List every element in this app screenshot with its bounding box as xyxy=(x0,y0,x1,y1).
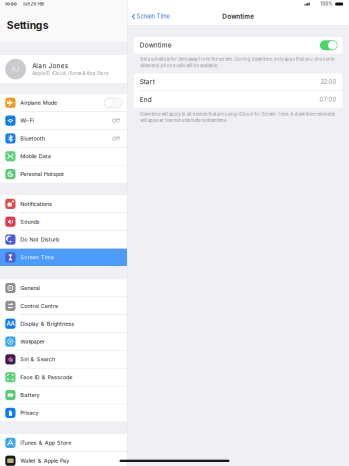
staticText: Wallet & Apple Pay xyxy=(20,457,69,464)
staticText: Downtime will apply to all devices that … xyxy=(140,111,335,123)
staticText: Personal Hotspot xyxy=(20,171,64,177)
staticText: iTunes & App Store xyxy=(20,439,71,446)
button[interactable]: Screen Time xyxy=(0,249,127,266)
button[interactable]: iTunes & App Store xyxy=(0,434,127,452)
button[interactable]: AA xyxy=(0,315,127,332)
button[interactable]: Face ID & Passcode xyxy=(0,368,127,386)
button[interactable]: Wi-Fi xyxy=(0,112,127,129)
button[interactable]: Bluetooth xyxy=(0,130,127,147)
button[interactable]: Battery xyxy=(0,386,127,404)
button[interactable]: AJ xyxy=(0,55,127,83)
staticText: Siri & Search xyxy=(20,356,55,363)
staticText: Start xyxy=(140,78,155,86)
staticText: 07:00 xyxy=(319,96,336,103)
staticText: Sounds xyxy=(20,218,39,225)
staticText: Battery xyxy=(20,392,39,398)
button[interactable]: Privacy xyxy=(0,404,127,422)
staticText: Face ID & Passcode xyxy=(20,374,72,380)
button[interactable]: Control Centre xyxy=(0,297,127,315)
staticText: Settings xyxy=(7,19,49,31)
staticText: AJ xyxy=(12,65,20,73)
staticText: Downtime xyxy=(222,13,254,20)
button[interactable]: Mobile Data xyxy=(0,148,127,165)
button[interactable]: Sounds xyxy=(0,213,127,230)
button[interactable]: Siri & Search xyxy=(0,351,127,368)
staticText: Airplane Mode xyxy=(20,99,57,106)
staticText: Wallpaper xyxy=(20,338,45,345)
staticText: Tue 26 Feb xyxy=(22,1,44,7)
staticText: Do Not Disturb xyxy=(20,236,59,243)
staticText: Alan Jones xyxy=(32,62,68,70)
staticText: AA xyxy=(6,320,14,327)
button[interactable]: Do Not Disturb xyxy=(0,231,127,248)
staticText: Notifications xyxy=(20,201,52,207)
button[interactable]: General xyxy=(0,279,127,297)
staticText: 22:00 xyxy=(320,78,336,85)
staticText: Mobile Data xyxy=(20,153,51,160)
staticText: Apple ID, iCloud, iTunes & App Store xyxy=(32,71,108,76)
button[interactable]: Wallet & Apple Pay xyxy=(0,452,127,466)
button[interactable]: Airplane Mode xyxy=(0,94,127,111)
staticText: Control Centre xyxy=(20,303,58,309)
staticText: Screen Time xyxy=(136,13,169,20)
staticText: Display & Brightness xyxy=(20,320,74,327)
button[interactable]: Notifications xyxy=(0,195,127,213)
staticText: Downtime xyxy=(140,41,172,49)
staticText: Screen Time xyxy=(20,254,54,261)
staticText: 10:00 xyxy=(5,2,17,6)
button[interactable]: Personal Hotspot xyxy=(0,165,127,183)
button[interactable]: Wallpaper xyxy=(0,333,127,350)
staticText: General xyxy=(20,285,39,291)
button[interactable]: Screen Time xyxy=(128,11,169,22)
staticText: Bluetooth xyxy=(20,135,45,142)
staticText: Wi-Fi xyxy=(20,117,33,124)
staticText: Off xyxy=(112,135,120,142)
button[interactable]: End xyxy=(134,91,342,108)
button[interactable]: Start xyxy=(134,73,342,90)
staticText: 100% xyxy=(320,1,332,6)
staticText: Set a schedule for time away from the sc… xyxy=(140,57,335,68)
staticText: End xyxy=(140,96,152,103)
staticText: Privacy xyxy=(20,410,38,416)
staticText: Off xyxy=(112,117,120,124)
